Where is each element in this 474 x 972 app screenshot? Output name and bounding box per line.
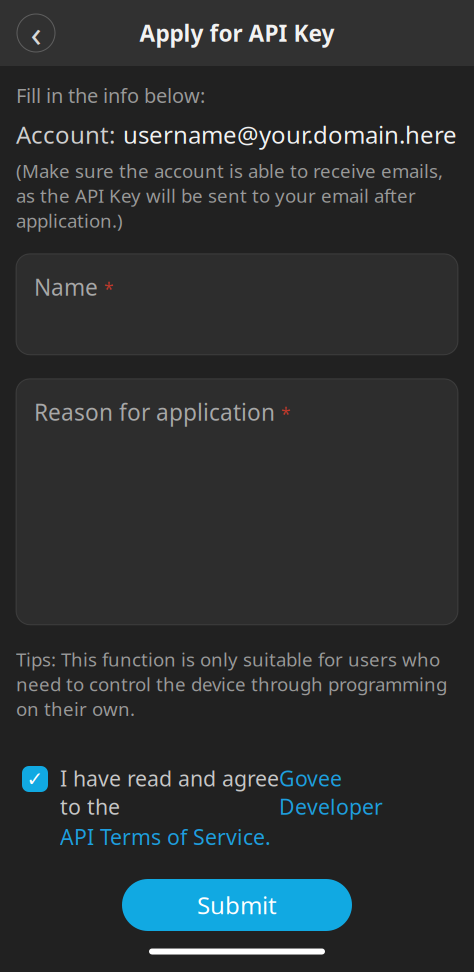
staticText: Fill in the info below: xyxy=(16,82,205,109)
staticText: Tips: This function is only suitable for… xyxy=(16,647,447,721)
staticText: username@your.domain.here xyxy=(123,119,457,150)
staticText: * xyxy=(104,277,114,300)
staticText: Apply for API Key xyxy=(139,18,334,48)
staticText: Submit xyxy=(197,889,277,921)
button[interactable]: Submit xyxy=(122,879,352,931)
staticText: Name xyxy=(34,272,98,302)
staticText: Account: xyxy=(16,119,115,150)
staticText: Govee Developer xyxy=(279,764,383,821)
staticText: Reason for application xyxy=(34,397,275,427)
button[interactable]: ✓ xyxy=(0,764,474,851)
staticText: ‹ xyxy=(30,9,41,57)
staticText: I have read and agree to the xyxy=(60,764,279,821)
staticText: ✓ xyxy=(26,768,43,790)
staticText: (Make sure the account is able to receiv… xyxy=(16,158,443,233)
staticText: * xyxy=(281,402,291,425)
button[interactable]: Back xyxy=(10,7,62,59)
staticText: API Terms of Service. xyxy=(60,823,271,851)
